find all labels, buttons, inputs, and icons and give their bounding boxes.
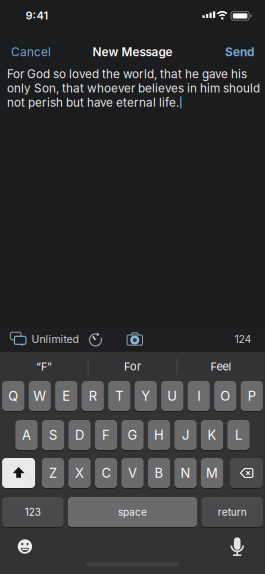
button[interactable]: space [68,497,197,527]
staticText: O [220,388,230,404]
button[interactable]: T [108,381,130,411]
button[interactable]: G [121,420,144,450]
staticText: 9:41 [25,9,48,22]
staticText: F [102,427,110,443]
button[interactable]: Disappearing messages timer [87,332,103,348]
button[interactable]: Shift [2,458,35,488]
button[interactable]: J [174,420,197,450]
button[interactable]: C [95,458,117,488]
button[interactable]: S [42,420,64,450]
staticText: J [182,427,189,443]
staticText: return [218,506,247,518]
staticText: W [33,388,46,404]
staticText: V [128,465,137,481]
staticText: For God so loved the world, that he gave… [7,67,247,81]
button[interactable]: Y [135,381,157,411]
button[interactable]: I [188,381,210,411]
staticText: L [235,427,242,443]
button[interactable]: N [174,458,197,488]
button[interactable]: For [89,353,176,379]
button[interactable]: M [201,458,223,488]
button[interactable]: K [201,420,223,450]
button[interactable]: Send [225,45,254,59]
staticText: P [248,388,256,404]
staticText: C [101,465,110,481]
button[interactable]: return [201,497,263,527]
staticText: 123 [25,506,41,518]
staticText: M [206,465,218,481]
staticText: Z [49,465,57,481]
button[interactable]: X [68,458,91,488]
button[interactable]: Delete [230,458,263,488]
staticText: 124 [234,333,251,346]
staticText: U [167,388,177,404]
staticText: D [75,427,84,443]
button[interactable]: Unlimited [9,331,78,348]
staticText: Feel [211,360,232,373]
staticText: “F” [36,360,52,373]
staticText: T [115,388,123,404]
button[interactable]: D [68,420,91,450]
staticText: Y [141,388,150,404]
staticText: B [154,465,163,481]
staticText: G [127,427,137,443]
staticText: only Son, that whoever believes in him s… [7,81,260,95]
button[interactable]: V [121,458,144,488]
staticText: X [75,465,84,481]
button[interactable]: A [15,420,38,450]
button[interactable]: 123 [2,497,64,527]
button[interactable]: R [82,381,104,411]
button[interactable]: Dictation [231,537,244,557]
button[interactable]: W [29,381,51,411]
button[interactable]: F [95,420,117,450]
button[interactable]: O [214,381,236,411]
button[interactable]: U [161,381,183,411]
button[interactable]: “F” [0,353,88,379]
staticText: S [49,427,57,443]
staticText: Cancel [11,45,51,59]
button[interactable]: P [241,381,263,411]
button[interactable]: Emoji [17,539,32,554]
staticText: not perish but have eternal life. [7,95,179,109]
button[interactable]: Camera [127,332,143,348]
staticText: For [124,360,141,373]
staticText: Q [8,388,18,404]
staticText: Unlimited [31,333,78,346]
staticText: H [154,427,164,443]
button[interactable]: E [55,381,77,411]
staticText: A [22,427,31,443]
staticText: I [197,388,200,404]
staticText: space [118,506,147,518]
staticText: New Message [92,45,172,59]
staticText: Send [225,45,254,59]
button[interactable]: L [227,420,250,450]
staticText: N [180,465,190,481]
staticText: R [89,388,97,404]
button[interactable]: Q [2,381,24,411]
button[interactable]: B [148,458,170,488]
button[interactable]: H [148,420,170,450]
button[interactable]: Z [42,458,64,488]
button[interactable]: Feel [177,353,265,379]
button[interactable]: Cancel [11,45,51,59]
staticText: E [62,388,70,404]
staticText: K [207,427,216,443]
